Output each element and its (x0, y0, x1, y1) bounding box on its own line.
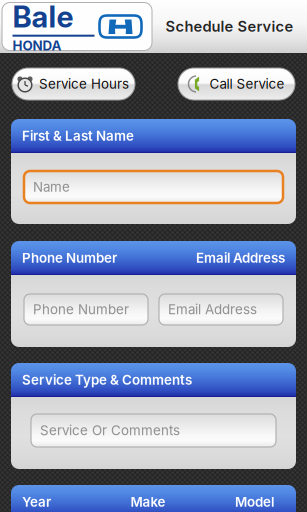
staticText: Service Or Comments (40, 422, 180, 438)
staticText: First & Last Name (22, 128, 134, 144)
staticText: Schedule Service (165, 18, 293, 35)
staticText: Make (130, 494, 165, 510)
staticText: Email Address (168, 301, 257, 317)
button[interactable]: Email Address (159, 294, 283, 325)
staticText: Bale (12, 0, 73, 35)
staticText: Model (235, 494, 274, 510)
button[interactable]: Name (24, 171, 283, 203)
staticText: Service Type & Comments (22, 372, 192, 388)
staticText: Call Service (209, 76, 284, 92)
staticText: HONDA (12, 38, 61, 54)
button[interactable]: Phone Number (24, 294, 148, 325)
button[interactable]: Service Or Comments (31, 414, 276, 447)
staticText: Year (22, 494, 51, 510)
staticText: Phone Number (33, 301, 129, 317)
button[interactable]: Call Service (178, 68, 295, 100)
staticText: Email Address (196, 250, 285, 266)
staticText: Name (33, 179, 70, 195)
staticText: Service Hours (39, 76, 129, 92)
staticText: Phone Number (22, 250, 117, 266)
button[interactable]: Service Hours (12, 68, 135, 100)
